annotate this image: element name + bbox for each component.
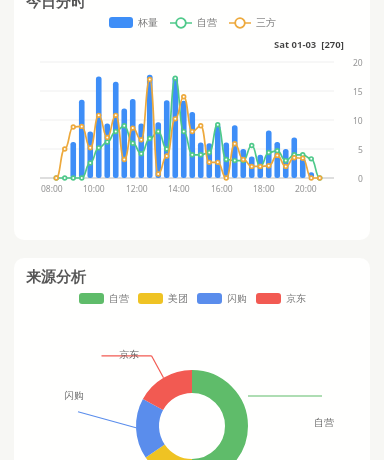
staticText: 闪购 [64, 389, 84, 402]
staticText: 10 [353, 115, 363, 127]
button[interactable]: 京东 [256, 292, 306, 305]
staticText: 20 [353, 57, 363, 69]
staticText: 18:00 [253, 183, 275, 195]
staticText: 闪购 [227, 292, 247, 305]
staticText: 08:00 [41, 183, 63, 195]
staticText: 今日分时 [26, 0, 86, 12]
staticText: 20:00 [295, 183, 317, 195]
staticText: 12:00 [126, 183, 148, 195]
button[interactable]: 自营 [79, 292, 129, 305]
staticText: 京东 [119, 348, 139, 361]
staticText: Sat 01-03 [270] [274, 38, 344, 51]
button[interactable]: 美团 [138, 292, 188, 305]
button[interactable]: 三方 [229, 16, 276, 29]
staticText: 16:00 [211, 183, 233, 195]
staticText: 自营 [109, 292, 129, 305]
button[interactable]: 自营 [170, 16, 217, 29]
staticText: 15 [353, 86, 363, 98]
staticText: 京东 [286, 292, 306, 305]
button[interactable]: 闪购 [197, 292, 247, 305]
staticText: 5 [358, 144, 363, 156]
staticText: 来源分析 [26, 268, 86, 287]
staticText: 三方 [256, 16, 276, 29]
staticText: 杯量 [138, 16, 158, 29]
button[interactable]: 来源分析 [14, 258, 370, 460]
staticText: 14:00 [168, 183, 190, 195]
staticText: 自营 [197, 16, 217, 29]
button[interactable]: 今日分时 [14, 0, 370, 240]
staticText: 美团 [168, 292, 188, 305]
button[interactable]: 杯量 [109, 16, 158, 29]
staticText: 自营 [314, 416, 334, 429]
staticText: 0 [358, 173, 363, 185]
staticText: 10:00 [83, 183, 105, 195]
